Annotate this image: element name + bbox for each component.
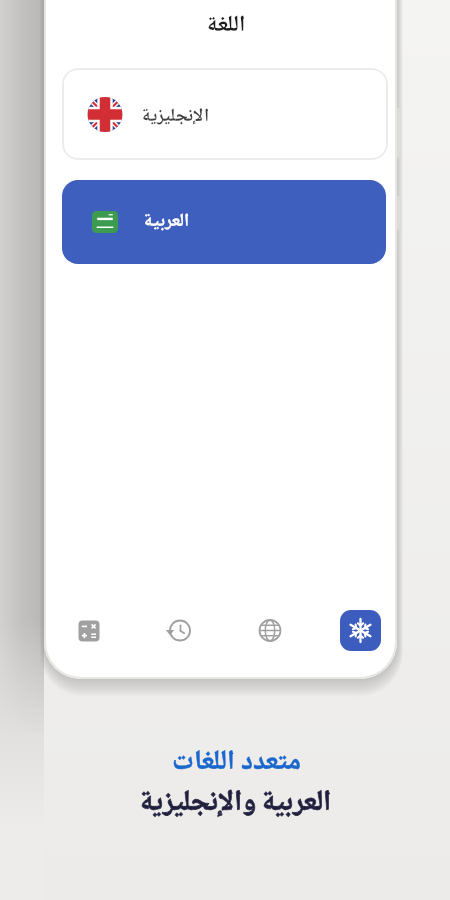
button[interactable]	[62, 68, 388, 160]
button[interactable]	[152, 603, 208, 659]
button[interactable]	[61, 603, 117, 659]
button[interactable]	[62, 180, 386, 264]
button[interactable]	[242, 603, 298, 659]
button[interactable]	[340, 610, 381, 651]
